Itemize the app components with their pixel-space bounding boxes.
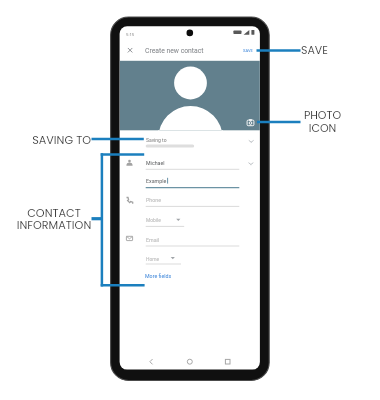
staticText: PHOTO ICON [303, 107, 342, 136]
button[interactable]: PHOTO ICON [303, 107, 342, 136]
button[interactable]: Recent apps [217, 353, 239, 369]
staticText: SAVE [301, 42, 377, 57]
staticText: Mobile [146, 217, 161, 223]
button[interactable]: Email address [121, 230, 259, 249]
button[interactable]: Phone number [121, 192, 259, 211]
staticText: Example [146, 178, 167, 184]
button[interactable]: Change photo [243, 114, 257, 128]
button[interactable]: Back [141, 353, 163, 369]
button[interactable]: More fields [140, 269, 180, 283]
staticText: Create new contact [145, 47, 204, 55]
button[interactable]: First name [121, 153, 259, 173]
staticText: SAVE [243, 48, 253, 53]
button[interactable]: Close [123, 42, 138, 58]
staticText: 5:15 [126, 32, 135, 37]
button[interactable]: Email label [121, 249, 259, 268]
button[interactable]: Save contact [240, 43, 258, 57]
button[interactable]: CONTACT INFORMATION [12, 205, 96, 233]
button[interactable]: Home [179, 353, 201, 369]
button[interactable]: SAVE [301, 42, 377, 57]
staticText: SAVING TO [1, 132, 91, 148]
staticText: Phone [146, 197, 162, 203]
button[interactable]: SAVING TO [1, 132, 91, 148]
staticText: Michael [146, 160, 165, 166]
staticText: Email [146, 237, 160, 243]
staticText: Home [146, 256, 160, 262]
button[interactable]: Saving to account [121, 131, 259, 153]
button[interactable]: Last name [121, 173, 259, 192]
staticText: Saving to [146, 137, 167, 143]
staticText: CONTACT INFORMATION [12, 205, 96, 233]
staticText: More fields [145, 273, 172, 279]
button[interactable]: Phone label [121, 211, 259, 230]
